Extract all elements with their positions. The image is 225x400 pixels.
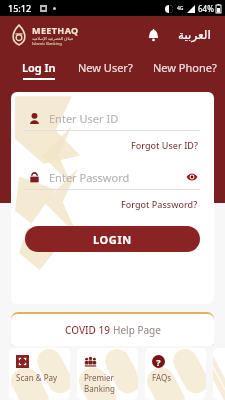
button[interactable] <box>213 348 225 400</box>
staticText: Enter User ID <box>49 111 119 126</box>
staticText: LOGIN <box>93 232 132 247</box>
staticText: New User? <box>78 60 133 75</box>
button[interactable]: العربية <box>174 24 215 46</box>
staticText: ? <box>156 356 161 368</box>
button[interactable]: Forgot Password? <box>119 196 200 212</box>
staticText: 64% <box>198 3 214 14</box>
staticText: MEETHAQ <box>32 24 79 36</box>
staticText: Forgot User ID? <box>131 139 198 151</box>
staticText: FAQs <box>152 372 172 383</box>
button[interactable]: New User? <box>78 58 133 82</box>
button[interactable]: Enter User ID <box>25 108 200 131</box>
button[interactable]: Forgot User ID? <box>129 137 200 153</box>
staticText: Islamic Banking <box>32 41 62 46</box>
button[interactable]: New Phone? <box>153 58 217 82</box>
button[interactable]: ? <box>145 348 206 400</box>
button[interactable]: Notifications <box>140 22 166 48</box>
button[interactable]: LOGIN <box>25 226 200 252</box>
staticText: New Phone? <box>153 60 217 75</box>
button[interactable]: Log In <box>22 58 56 82</box>
staticText: 15:12 <box>8 2 32 14</box>
button[interactable]: MEETHAQ <box>10 24 79 46</box>
staticText: Help Page <box>113 323 161 337</box>
staticText: العربية <box>178 28 211 42</box>
staticText: Forgot Password? <box>121 198 198 210</box>
staticText: COVID 19 <box>65 323 113 337</box>
staticText: 4G <box>177 5 184 12</box>
button[interactable]: Premier <box>77 348 138 400</box>
staticText: Premier <box>84 372 114 383</box>
staticText: Scan & Pay <box>16 372 58 383</box>
staticText: Enter Password <box>49 170 130 185</box>
button[interactable]: Show password <box>184 169 200 185</box>
staticText: ميثاق المصرفية الإسلامية <box>32 36 74 41</box>
button[interactable]: Scan & Pay <box>9 348 70 400</box>
button[interactable]: Enter Password <box>25 167 200 190</box>
staticText: Log In <box>22 60 56 75</box>
staticText: Banking <box>84 383 115 394</box>
button[interactable]: COVID 19 <box>11 314 214 346</box>
